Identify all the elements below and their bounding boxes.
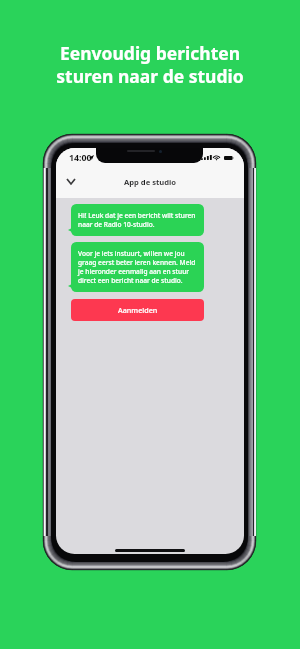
staticText: Voor je iets instuurt, willen we jou gra… — [78, 249, 197, 285]
button[interactable]: Aanmelden — [71, 299, 204, 321]
staticText: Hi! Leuk dat je een bericht wilt sturen … — [78, 211, 197, 229]
button[interactable]: Sluiten — [62, 173, 79, 190]
staticText: Eenvoudig berichten sturen naar de studi… — [56, 41, 244, 88]
staticText: 14:00 — [69, 152, 92, 164]
staticText: Aanmelden — [118, 305, 158, 315]
staticText: App de studio — [124, 177, 176, 187]
